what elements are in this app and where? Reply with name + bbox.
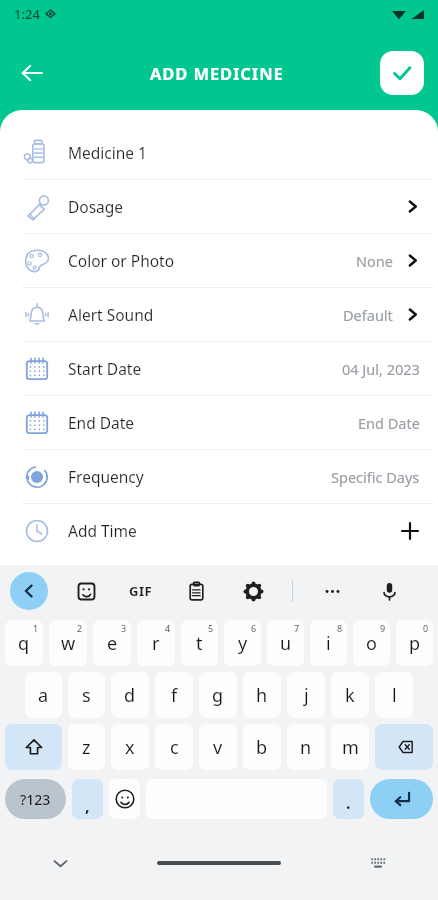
staticText: u <box>280 631 292 656</box>
staticText: 4 <box>165 622 171 634</box>
button[interactable]: Backspace <box>375 724 433 770</box>
button[interactable]: f <box>155 672 193 718</box>
staticText: GIF <box>129 582 153 600</box>
button[interactable]: b <box>243 724 281 770</box>
staticText: l <box>392 683 397 708</box>
button[interactable]: Dosage <box>0 180 438 233</box>
button[interactable]: Clipboard <box>178 573 214 609</box>
staticText: q <box>18 631 30 656</box>
staticText: 7 <box>294 622 300 634</box>
button[interactable]: c <box>155 724 193 770</box>
staticText: o <box>366 631 377 656</box>
button[interactable]: Medicine 1 <box>0 126 438 179</box>
staticText: 6 <box>251 622 257 634</box>
staticText: Color or Photo <box>68 250 175 271</box>
button[interactable]: Shift <box>5 724 62 770</box>
staticText: j <box>304 683 309 708</box>
staticText: Medicine 1 <box>68 142 147 163</box>
button[interactable]: Add Time <box>0 504 438 557</box>
button[interactable]: o <box>353 620 390 666</box>
staticText: f <box>171 683 178 708</box>
staticText: b <box>256 735 268 760</box>
button[interactable]: s <box>68 672 105 718</box>
button[interactable]: Alert Sound <box>0 288 438 341</box>
staticText: 0 <box>423 622 429 634</box>
staticText: 8 <box>337 622 343 634</box>
staticText: Default <box>343 305 393 325</box>
button[interactable]: Change keyboard <box>364 849 392 877</box>
staticText: t <box>196 631 203 656</box>
staticText: z <box>82 735 91 760</box>
button[interactable]: Emoji <box>109 779 140 819</box>
button[interactable]: d <box>111 672 149 718</box>
staticText: e <box>107 631 118 656</box>
staticText: w <box>61 631 76 656</box>
button[interactable]: Voice input <box>371 573 407 609</box>
staticText: d <box>124 683 136 708</box>
button[interactable]: More options <box>314 573 350 609</box>
button[interactable]: z <box>68 724 105 770</box>
staticText: 5 <box>208 622 214 634</box>
button[interactable]: Color or Photo <box>0 234 438 287</box>
button[interactable]: , <box>72 779 103 819</box>
staticText: Dosage <box>68 196 124 217</box>
button[interactable]: j <box>287 672 325 718</box>
button[interactable]: t <box>181 620 218 666</box>
staticText: , <box>85 795 90 817</box>
button[interactable]: Save <box>380 51 424 95</box>
staticText: v <box>213 735 223 760</box>
button[interactable]: Stickers <box>68 573 104 609</box>
button[interactable]: Hide keyboard <box>46 849 74 877</box>
staticText: Frequency <box>68 466 144 487</box>
staticText: r <box>152 631 160 656</box>
button[interactable]: Start Date <box>0 342 438 395</box>
button[interactable]: q <box>5 620 43 666</box>
button[interactable]: k <box>331 672 369 718</box>
button[interactable]: a <box>25 672 62 718</box>
button[interactable]: Frequency <box>0 450 438 503</box>
staticText: i <box>326 631 331 656</box>
staticText: 04 Jul, 2023 <box>342 359 420 379</box>
button[interactable]: h <box>243 672 281 718</box>
button[interactable]: m <box>331 724 369 770</box>
button[interactable]: y <box>224 620 261 666</box>
staticText: Add Time <box>68 520 137 541</box>
button[interactable]: u <box>267 620 304 666</box>
button[interactable]: Back <box>10 572 48 610</box>
staticText: x <box>125 735 135 760</box>
staticText: End Date <box>358 413 420 433</box>
staticText: 1:24 <box>14 5 40 23</box>
staticText: None <box>356 251 393 271</box>
button[interactable]: x <box>111 724 149 770</box>
staticText: End Date <box>68 412 135 433</box>
staticText: 1 <box>33 622 39 634</box>
button[interactable]: Enter <box>370 779 433 819</box>
button[interactable]: ?123 <box>5 779 66 819</box>
button[interactable]: g <box>199 672 237 718</box>
button[interactable]: Settings <box>235 573 271 609</box>
staticText: a <box>38 683 49 708</box>
button[interactable]: . <box>333 779 364 819</box>
staticText: 3 <box>121 622 127 634</box>
button[interactable]: l <box>375 672 413 718</box>
staticText: h <box>256 683 268 708</box>
staticText: p <box>409 631 421 656</box>
staticText: y <box>238 631 248 656</box>
button[interactable]: v <box>199 724 237 770</box>
staticText: 9 <box>380 622 386 634</box>
staticText: Start Date <box>68 358 142 379</box>
button[interactable]: i <box>310 620 347 666</box>
staticText: k <box>345 683 355 708</box>
button[interactable]: n <box>287 724 325 770</box>
staticText: Specific Days <box>331 467 420 487</box>
button[interactable]: p <box>396 620 433 666</box>
button[interactable]: End Date <box>0 396 438 449</box>
button[interactable]: r <box>137 620 175 666</box>
button[interactable]: w <box>49 620 87 666</box>
staticText: . <box>346 792 351 814</box>
button[interactable]: Back <box>10 51 54 95</box>
button[interactable]: e <box>93 620 131 666</box>
button[interactable]: GIF <box>124 574 158 608</box>
staticText: ADD MEDICINE <box>150 62 284 84</box>
